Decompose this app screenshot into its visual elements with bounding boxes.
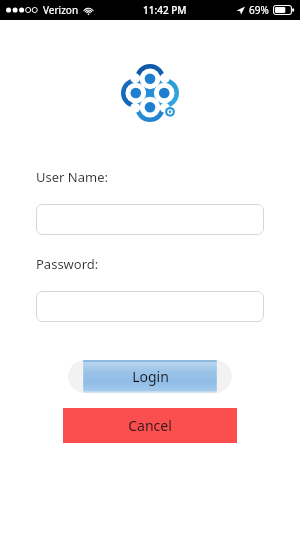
staticText: 69% <box>249 3 269 17</box>
staticText: Verizon <box>43 3 79 17</box>
staticText: Password: <box>36 255 99 273</box>
button[interactable]: Cancel <box>63 408 237 443</box>
button[interactable] <box>36 204 264 235</box>
staticText: 11:42 PM <box>143 3 187 17</box>
button[interactable]: Login <box>68 360 232 393</box>
staticText: Login <box>132 367 169 386</box>
staticText: User Name: <box>36 168 108 186</box>
button[interactable] <box>36 291 264 322</box>
staticText: Cancel <box>128 416 172 435</box>
